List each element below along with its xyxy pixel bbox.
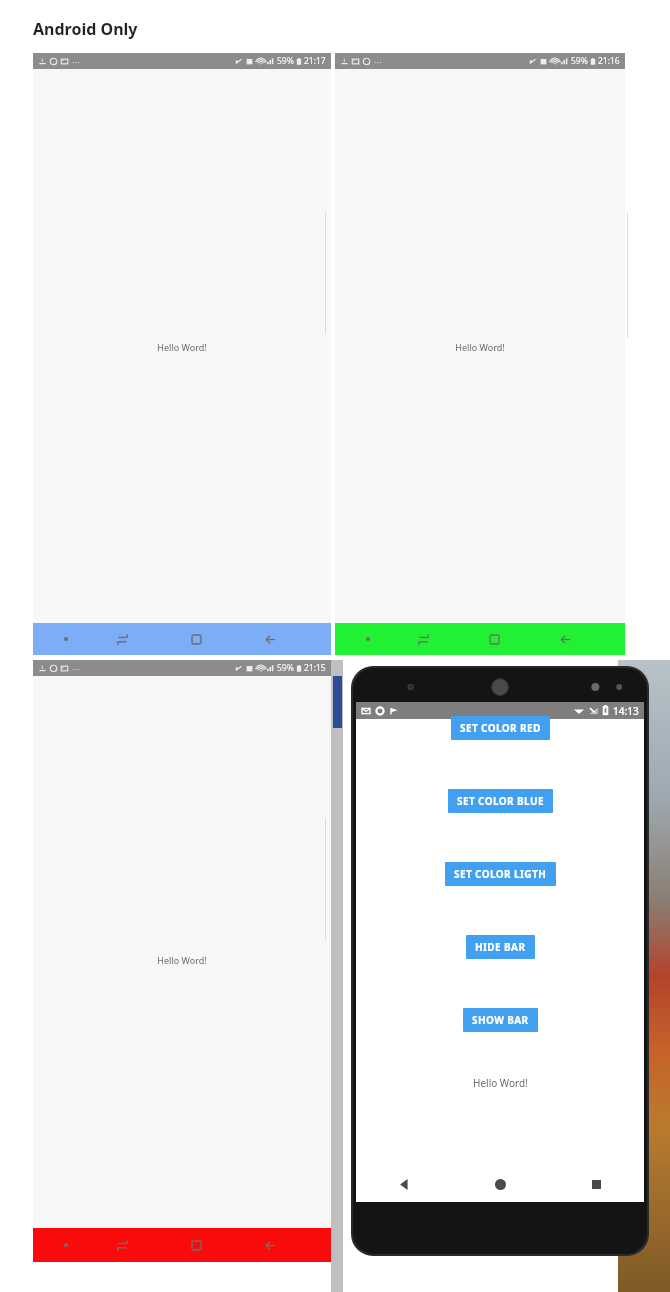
staticText: 21:16 xyxy=(598,55,620,67)
button[interactable]: Navigation bar xyxy=(33,623,331,655)
staticText: Hello Word! xyxy=(33,341,331,353)
staticText: Hello Word! xyxy=(335,341,625,353)
staticText: 59% xyxy=(277,662,294,674)
button[interactable]: Back xyxy=(392,1172,416,1196)
staticText: 59% xyxy=(571,55,588,67)
button[interactable]: Navigation bar xyxy=(33,1228,331,1262)
button[interactable]: HIDE BAR xyxy=(466,935,535,959)
staticText: SET COLOR RED xyxy=(460,721,541,735)
staticText: SET COLOR BLUE xyxy=(457,794,544,808)
staticText: SHOW BAR xyxy=(472,1013,529,1027)
button[interactable]: Navigation bar xyxy=(335,623,625,655)
staticText: 21:15 xyxy=(304,662,326,674)
staticText: 14:13 xyxy=(613,704,639,718)
button[interactable]: SHOW BAR xyxy=(463,1008,538,1032)
staticText: Hello Word! xyxy=(473,1076,528,1090)
staticText: 21:17 xyxy=(304,55,326,67)
staticText: 59% xyxy=(277,55,294,67)
staticText: HIDE BAR xyxy=(475,940,526,954)
staticText: Hello Word! xyxy=(33,954,331,966)
button[interactable]: Recents xyxy=(584,1172,608,1196)
button[interactable]: SET COLOR RED xyxy=(451,716,550,740)
button[interactable]: Home xyxy=(488,1172,512,1196)
staticText: Android Only xyxy=(33,18,138,40)
staticText: SET COLOR LIGTH xyxy=(454,867,547,881)
button[interactable]: SET COLOR BLUE xyxy=(448,789,553,813)
button[interactable]: SET COLOR LIGTH xyxy=(445,862,556,886)
